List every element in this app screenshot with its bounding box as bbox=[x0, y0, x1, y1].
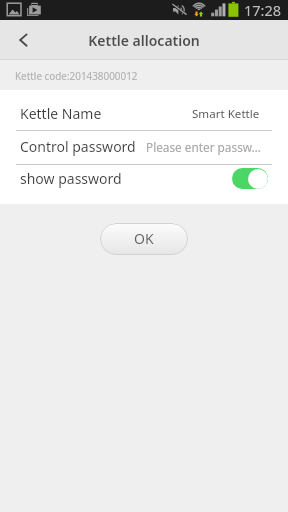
staticText: OK bbox=[134, 229, 154, 248]
button[interactable]: Show password bbox=[232, 168, 268, 189]
button[interactable]: show password bbox=[0, 165, 288, 204]
staticText: Please enter passw… bbox=[146, 139, 261, 155]
staticText: Kettle code:201438000012 bbox=[15, 69, 138, 82]
button[interactable]: Back bbox=[0, 20, 46, 60]
staticText: Smart Kettle bbox=[192, 106, 260, 122]
button[interactable]: Control password bbox=[0, 131, 288, 164]
button[interactable]: Kettle Name bbox=[0, 90, 288, 130]
staticText: Kettle Name bbox=[20, 104, 102, 123]
staticText: 17:28 bbox=[244, 0, 282, 20]
button[interactable]: OK bbox=[100, 223, 188, 255]
staticText: show password bbox=[20, 169, 122, 188]
staticText: Control password bbox=[20, 137, 136, 156]
staticText: Kettle allocation bbox=[88, 31, 200, 50]
